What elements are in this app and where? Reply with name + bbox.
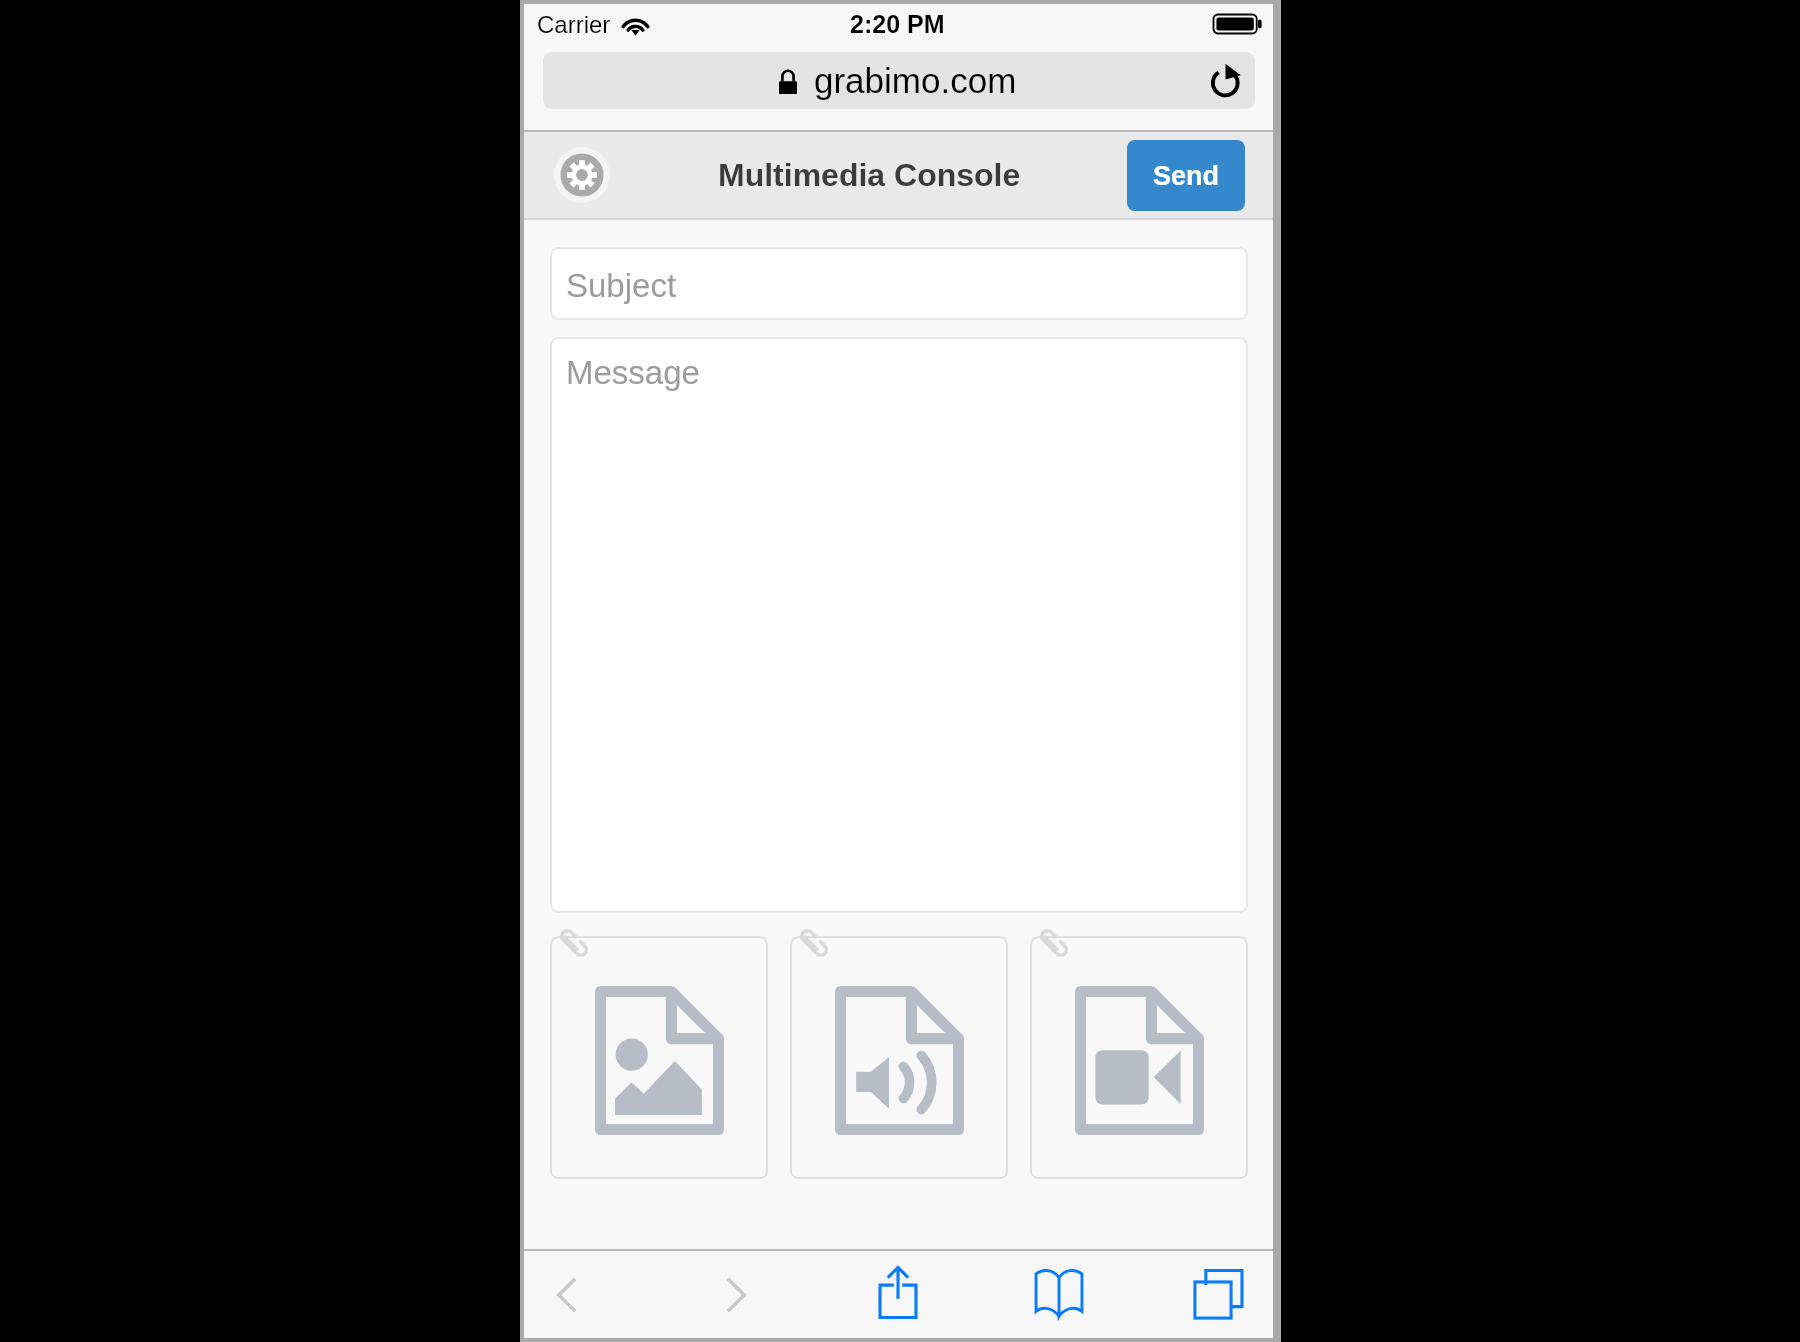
staticText: Carrier: [537, 11, 611, 38]
button[interactable]: Attach audio: [790, 936, 1008, 1179]
button[interactable]: Back: [530, 1251, 604, 1338]
button[interactable]: Attach image: [550, 936, 768, 1179]
button[interactable]: Send: [1127, 140, 1245, 211]
button[interactable]: Bookmarks: [1019, 1251, 1099, 1338]
button[interactable]: Subject: [550, 247, 1248, 320]
staticText: Send: [1153, 161, 1220, 191]
staticText: Message: [566, 354, 700, 391]
button[interactable]: Attach video: [1030, 936, 1248, 1179]
button[interactable]: grabimo.com: [543, 52, 1255, 109]
staticText: Multimedia Console: [718, 157, 1021, 193]
button[interactable]: Message: [550, 337, 1248, 913]
button[interactable]: Tabs: [1180, 1251, 1258, 1338]
staticText: grabimo.com: [814, 61, 1017, 100]
button[interactable]: Forward: [699, 1251, 773, 1338]
button[interactable]: Settings: [554, 147, 610, 203]
staticText: Subject: [566, 267, 677, 304]
staticText: 2:20 PM: [850, 10, 945, 38]
button[interactable]: Share: [858, 1251, 938, 1338]
